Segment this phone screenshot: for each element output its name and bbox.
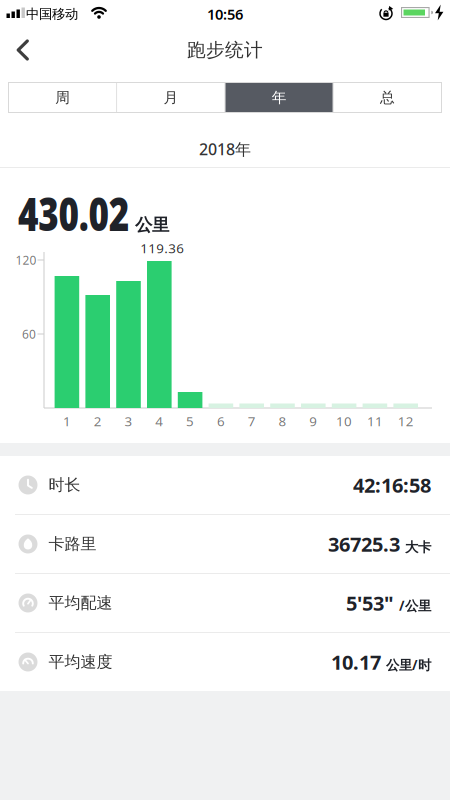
staticText: 总 <box>380 88 395 106</box>
button[interactable]: 周 <box>9 83 116 112</box>
staticText: 10:56 <box>207 4 243 24</box>
staticText: 跑步统计 <box>187 38 263 61</box>
button[interactable]: 月 <box>117 83 224 112</box>
staticText: 年 <box>272 88 287 106</box>
staticText: 9 <box>309 412 317 430</box>
staticText: 大卡 <box>405 539 431 555</box>
staticText: 8 <box>278 412 286 430</box>
button[interactable]: 总 <box>334 83 441 112</box>
staticText: 11 <box>367 412 383 430</box>
staticText: 周 <box>55 88 70 106</box>
staticText: 430.02 <box>18 182 166 244</box>
button[interactable]: 年 <box>225 83 333 112</box>
staticText: 卡路里 <box>48 534 96 554</box>
staticText: 时长 <box>48 475 80 495</box>
staticText: 42:16:58 <box>353 472 431 498</box>
staticText: 中国移动 <box>26 6 78 22</box>
staticText: 公里/时 <box>386 656 431 674</box>
staticText: 2 <box>94 412 102 430</box>
staticText: 5 <box>186 412 194 430</box>
staticText: 7 <box>248 412 256 430</box>
staticText: 10 <box>336 412 352 430</box>
staticText: 12 <box>398 412 414 430</box>
staticText: 1 <box>63 412 71 430</box>
staticText: 6 <box>217 412 225 430</box>
staticText: 120 <box>15 252 36 268</box>
staticText: 2018年 <box>199 138 251 160</box>
staticText: 36725.3 <box>328 531 400 557</box>
staticText: 3 <box>124 412 132 430</box>
staticText: 平均配速 <box>48 593 112 613</box>
staticText: 4 <box>155 412 163 430</box>
button[interactable]: Back <box>0 35 44 65</box>
staticText: 月 <box>163 88 178 106</box>
staticText: 公里 <box>135 214 169 236</box>
staticText: 10.17 <box>331 649 381 675</box>
staticText: 60 <box>22 326 36 342</box>
staticText: 平均速度 <box>48 652 112 672</box>
staticText: 119.36 <box>140 239 184 257</box>
staticText: /公里 <box>399 597 431 614</box>
staticText: 5'53" <box>346 590 394 616</box>
